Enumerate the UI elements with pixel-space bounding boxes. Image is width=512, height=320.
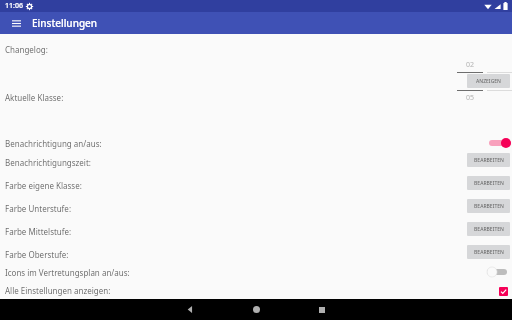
staticText: Farbe eigene Klasse: [5,180,82,191]
button[interactable]: BEARBEITEN [467,222,510,236]
staticText: Benachrichtigungszeit: [5,157,91,168]
button[interactable]: Home [244,299,268,320]
button[interactable]: ANZEIGEN [467,74,510,88]
staticText: Alle Einstellungen anzeigen: [5,285,111,296]
staticText: BEARBEITEN [474,203,504,210]
staticText: 11:06 [5,1,23,11]
staticText: BEARBEITEN [474,180,504,187]
button[interactable]: BEARBEITEN [467,153,510,167]
staticText: Benachrichtigung an/aus: [5,138,102,149]
button[interactable]: Icons im Vertretungsplan an/aus [487,265,511,279]
button[interactable]: Farbe Mittelstufe: [0,224,512,238]
button[interactable] [487,58,512,105]
staticText: Farbe Unterstufe: [5,203,72,214]
staticText: Farbe Mittelstufe: [5,226,72,237]
button[interactable]: Open navigation drawer [8,15,24,31]
button[interactable]: Alle Einstellungen anzeigen: [0,283,512,297]
staticText: Icons im Vertretungsplan an/aus: [5,267,130,278]
button[interactable]: Farbe eigene Klasse: [0,178,512,192]
button[interactable]: 02 [457,58,483,105]
button[interactable]: Back [178,299,202,320]
staticText: BEARBEITEN [474,226,504,233]
button[interactable]: Recent apps [310,299,334,320]
button[interactable]: Benachrichtigungszeit: [0,155,512,169]
button[interactable]: Aktuelle Klasse: [0,90,512,104]
staticText: Einstellungen [32,16,98,30]
button[interactable]: BEARBEITEN [467,176,510,190]
staticText: BEARBEITEN [474,157,504,164]
button[interactable]: BEARBEITEN [467,245,510,259]
button[interactable]: Farbe Oberstufe: [0,247,512,261]
button[interactable]: Alle Einstellungen anzeigen [496,284,510,298]
button[interactable]: Icons im Vertretungsplan an/aus: [0,265,512,279]
staticText: Aktuelle Klasse: [5,92,64,103]
button[interactable]: Farbe Unterstufe: [0,201,512,215]
button[interactable]: BEARBEITEN [467,199,510,213]
staticText: Farbe Oberstufe: [5,249,69,260]
staticText: 02 [466,60,475,70]
button[interactable]: Changelog: [0,42,512,56]
button[interactable]: Benachrichtigung an/aus [489,136,512,150]
staticText: Changelog: [5,44,48,55]
button[interactable]: Benachrichtigung an/aus: [0,136,512,150]
staticText: BEARBEITEN [474,249,504,256]
staticText: 05 [466,93,475,103]
staticText: ANZEIGEN [476,78,501,85]
